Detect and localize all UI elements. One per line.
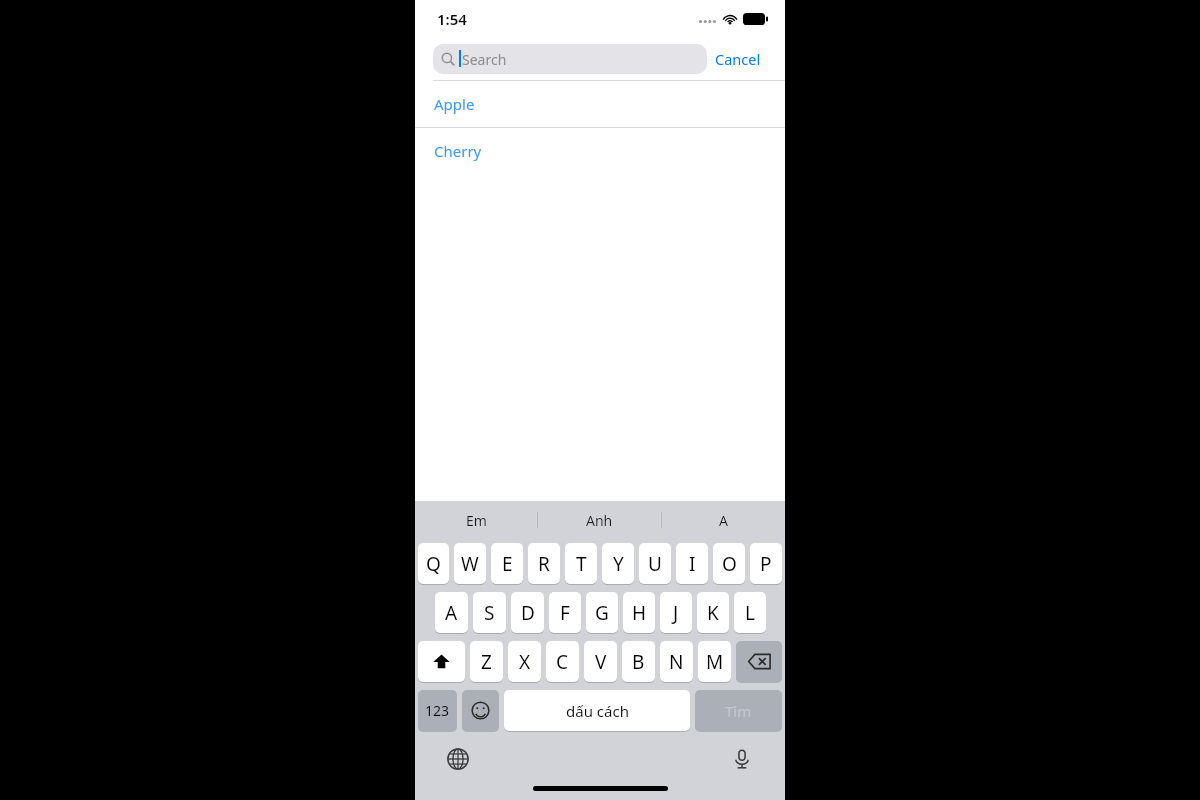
button[interactable]: D bbox=[511, 592, 544, 633]
button[interactable]: Em bbox=[415, 501, 537, 539]
button[interactable]: A bbox=[662, 501, 785, 539]
staticText: A bbox=[445, 600, 458, 626]
button[interactable]: X bbox=[508, 641, 541, 682]
staticText: J bbox=[673, 600, 679, 626]
staticText: D bbox=[521, 600, 535, 626]
button[interactable]: Tìm bbox=[695, 690, 782, 731]
staticText: Anh bbox=[586, 511, 613, 530]
button[interactable]: L bbox=[734, 592, 766, 633]
button[interactable]: Emoji bbox=[462, 690, 499, 731]
staticText: E bbox=[502, 551, 513, 577]
staticText: X bbox=[519, 649, 531, 675]
button[interactable]: H bbox=[623, 592, 655, 633]
staticText: Cancel bbox=[715, 49, 761, 69]
staticText: U bbox=[648, 551, 662, 577]
staticText: A bbox=[719, 511, 728, 530]
staticText: T bbox=[576, 551, 587, 577]
button[interactable]: Cancel bbox=[707, 45, 769, 73]
staticText: 1:54 bbox=[437, 9, 467, 29]
button[interactable]: W bbox=[454, 543, 486, 584]
button[interactable]: P bbox=[750, 543, 782, 584]
staticText: S bbox=[484, 600, 495, 626]
button[interactable]: M bbox=[698, 641, 731, 682]
button[interactable]: V bbox=[584, 641, 617, 682]
button[interactable]: Anh bbox=[538, 501, 661, 539]
staticText: N bbox=[669, 649, 684, 675]
button[interactable]: N bbox=[660, 641, 693, 682]
button[interactable]: Backspace bbox=[736, 641, 782, 682]
button[interactable]: T bbox=[565, 543, 597, 584]
button[interactable]: G bbox=[586, 592, 618, 633]
button[interactable]: 123 bbox=[418, 690, 457, 731]
button[interactable]: B bbox=[622, 641, 655, 682]
button[interactable]: Y bbox=[602, 543, 634, 584]
staticText: F bbox=[560, 600, 570, 626]
button[interactable]: F bbox=[549, 592, 581, 633]
staticText: Tìm bbox=[725, 701, 752, 721]
staticText: dấu cách bbox=[566, 701, 629, 721]
button[interactable]: J bbox=[660, 592, 692, 633]
staticText: 123 bbox=[425, 701, 450, 720]
button[interactable]: O bbox=[713, 543, 745, 584]
button[interactable]: Change keyboard language bbox=[443, 744, 473, 774]
button[interactable]: I bbox=[676, 543, 708, 584]
staticText: B bbox=[632, 649, 645, 675]
staticText: Search bbox=[462, 50, 507, 69]
staticText: V bbox=[595, 649, 607, 675]
staticText: Z bbox=[481, 649, 492, 675]
button[interactable]: A bbox=[435, 592, 468, 633]
button[interactable]: dấu cách bbox=[504, 690, 690, 731]
button[interactable]: E bbox=[491, 543, 523, 584]
staticText: M bbox=[706, 649, 724, 675]
button[interactable]: Q bbox=[418, 543, 449, 584]
button[interactable]: S bbox=[473, 592, 506, 633]
staticText: R bbox=[538, 551, 550, 577]
button[interactable]: Shift bbox=[418, 641, 465, 682]
staticText: Q bbox=[426, 551, 441, 577]
staticText: W bbox=[461, 551, 479, 577]
staticText: Y bbox=[613, 551, 624, 577]
button[interactable]: Cherry bbox=[415, 128, 785, 174]
staticText: K bbox=[707, 600, 719, 626]
button[interactable]: Dictation bbox=[727, 744, 757, 774]
button[interactable]: Search bbox=[433, 44, 707, 74]
button[interactable]: Apple bbox=[415, 81, 785, 127]
button[interactable]: C bbox=[546, 641, 579, 682]
staticText: Em bbox=[466, 511, 487, 530]
staticText: Cherry bbox=[434, 141, 482, 161]
staticText: P bbox=[760, 551, 772, 577]
button[interactable]: Z bbox=[470, 641, 503, 682]
button[interactable]: K bbox=[697, 592, 729, 633]
staticText: O bbox=[722, 551, 737, 577]
staticText: Apple bbox=[434, 94, 475, 114]
staticText: I bbox=[689, 551, 696, 577]
staticText: H bbox=[632, 600, 647, 626]
button[interactable]: R bbox=[528, 543, 560, 584]
button[interactable]: U bbox=[639, 543, 671, 584]
staticText: G bbox=[595, 600, 609, 626]
staticText: C bbox=[556, 649, 569, 675]
staticText: L bbox=[745, 600, 755, 626]
